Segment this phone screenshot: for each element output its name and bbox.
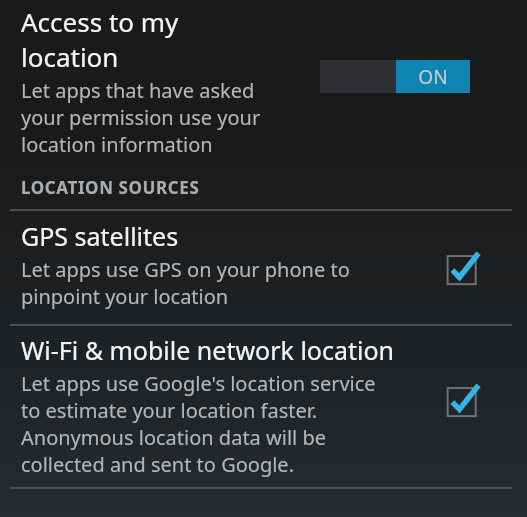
button[interactable]: GPS satellites checkbox, checked	[440, 245, 486, 291]
staticText: LOCATION SOURCES	[21, 176, 200, 199]
button[interactable]: Wi-Fi & mobile network location checkbox…	[440, 377, 486, 423]
staticText: Wi-Fi & mobile network location	[21, 333, 395, 367]
staticText: Let apps use GPS on your phone to pinpoi…	[21, 256, 350, 310]
staticText: Let apps use Google's location service t…	[21, 370, 376, 478]
staticText: ON	[418, 64, 448, 90]
staticText: Access to my	[21, 4, 179, 39]
button[interactable]: GPS satellites	[0, 211, 527, 324]
staticText: location	[21, 39, 119, 74]
button[interactable]: Wi-Fi & mobile network location	[0, 326, 527, 487]
staticText: GPS satellites	[21, 219, 179, 253]
button[interactable]: Access to my	[0, 0, 527, 165]
staticText: Let apps that have asked your permission…	[21, 77, 261, 158]
button[interactable]: Access to my location, on	[320, 60, 470, 93]
